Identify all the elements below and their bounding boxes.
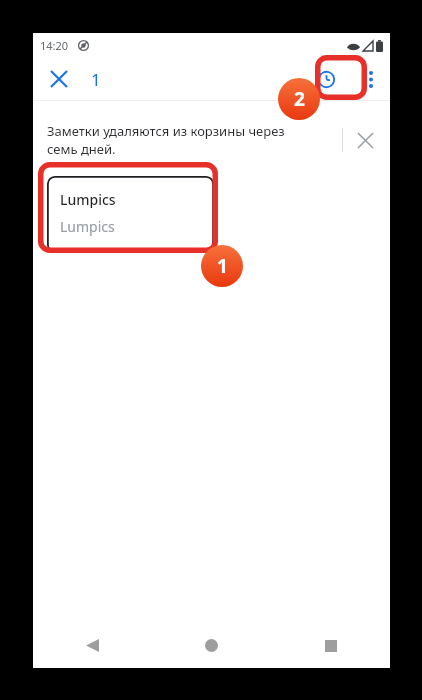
button[interactable]: Lumpics xyxy=(47,176,214,253)
staticText: Lumpics xyxy=(60,217,115,236)
button[interactable]: Close xyxy=(39,59,79,99)
staticText: 1 xyxy=(217,253,228,279)
button[interactable]: Home xyxy=(152,623,271,668)
staticText: 14:20 xyxy=(40,38,69,53)
staticText: Заметки удаляются из корзины через семь … xyxy=(47,122,295,158)
staticText: 1 xyxy=(91,68,101,91)
button[interactable]: Recents xyxy=(271,623,390,668)
button[interactable]: Back xyxy=(33,623,152,668)
staticText: Lumpics xyxy=(60,190,116,209)
button[interactable]: More options xyxy=(354,62,388,96)
button[interactable]: Restore xyxy=(306,59,346,99)
staticText: 2 xyxy=(294,86,305,112)
button[interactable]: Dismiss xyxy=(343,118,387,162)
